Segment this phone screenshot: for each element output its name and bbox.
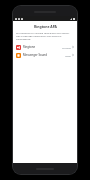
- staticText: Chrome: [62, 46, 71, 49]
- staticText: Ringtone APA: [34, 24, 57, 29]
- staticText: Messenger Sound: [23, 53, 65, 57]
- staticText: Set ringtone for Android device with our…: [16, 31, 74, 40]
- button[interactable]: Ringtone: [13, 43, 77, 51]
- staticText: radio: [65, 54, 71, 57]
- staticText: Ringtone: [23, 45, 62, 49]
- button[interactable]: Messenger Sound: [13, 51, 77, 59]
